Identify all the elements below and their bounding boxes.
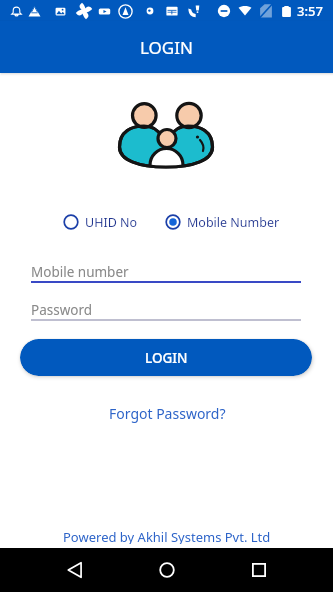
staticText: Mobile Number [187,214,280,231]
button[interactable]: Recents [239,550,279,590]
button[interactable]: Forgot Password? [106,402,228,424]
button[interactable]: Back [55,550,95,590]
staticText: 3:57 [297,2,323,20]
staticText: UHID No [85,214,138,231]
staticText: LOGIN [145,349,188,367]
staticText: Mobile number [31,263,129,281]
staticText: Forgot Password? [109,404,226,423]
button[interactable]: LOGIN [20,339,312,376]
button[interactable]: Mobile Number [164,213,280,231]
button[interactable]: UHID No [62,213,138,231]
button[interactable]: Home [147,550,187,590]
staticText: Powered by Akhil Systems Pvt. Ltd [63,528,271,544]
staticText: LOGIN [140,36,193,59]
staticText: Password [31,301,93,319]
